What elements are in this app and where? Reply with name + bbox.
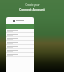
button[interactable] bbox=[6, 41, 34, 45]
button[interactable] bbox=[6, 29, 34, 33]
button[interactable]: Account bbox=[6, 17, 34, 24]
button[interactable] bbox=[6, 53, 34, 57]
button[interactable] bbox=[6, 33, 34, 37]
button[interactable] bbox=[6, 45, 34, 49]
button[interactable] bbox=[6, 37, 34, 41]
button[interactable] bbox=[6, 49, 34, 53]
staticText: Create your bbox=[25, 3, 40, 7]
staticText: Connect Account bbox=[19, 8, 45, 12]
